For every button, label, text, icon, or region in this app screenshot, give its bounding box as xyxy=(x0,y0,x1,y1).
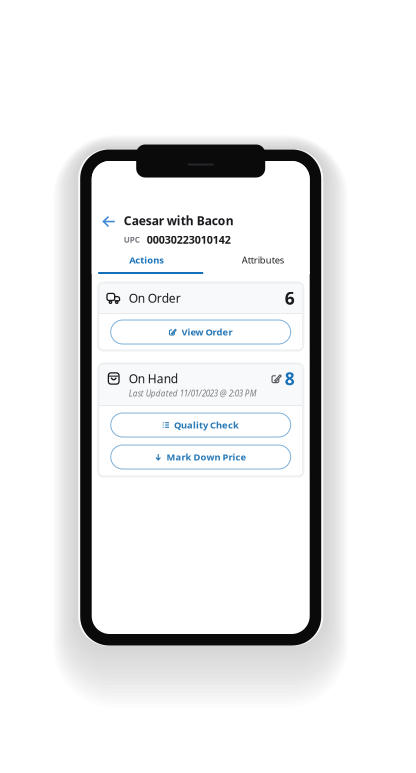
button[interactable]: Edit on hand quantity xyxy=(271,373,282,384)
staticText: 6 xyxy=(285,286,295,309)
staticText: On Order xyxy=(129,290,181,306)
staticText: Mark Down Price xyxy=(166,451,246,463)
staticText: Attributes xyxy=(242,254,284,266)
staticText: 8 xyxy=(285,367,295,390)
button[interactable]: Mark Down Price xyxy=(111,445,291,469)
staticText: Last Updated 11/01/2023 @ 2:03 PM xyxy=(129,388,257,399)
staticText: On Hand xyxy=(129,370,178,386)
staticText: UPC xyxy=(124,234,140,245)
button[interactable]: Actions xyxy=(98,254,203,274)
button[interactable]: Quality Check xyxy=(111,413,291,437)
button[interactable]: View Order xyxy=(111,320,291,344)
staticText: 00030223010142 xyxy=(147,232,231,247)
button[interactable]: Attributes xyxy=(203,254,313,274)
staticText: View Order xyxy=(181,326,232,338)
staticText: Quality Check xyxy=(174,419,239,431)
staticText: Caesar with Bacon xyxy=(124,212,234,228)
staticText: Actions xyxy=(129,254,164,266)
button[interactable]: Back xyxy=(102,212,116,228)
